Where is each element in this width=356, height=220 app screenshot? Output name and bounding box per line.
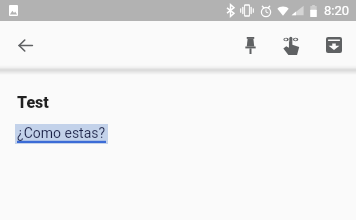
staticText: Test (17, 93, 49, 112)
staticText: ¿Como estas? (17, 125, 106, 141)
button[interactable]: Archive (313, 22, 355, 68)
staticText: 8:20 (324, 3, 350, 18)
button[interactable]: ¿Como estas? (15, 124, 108, 144)
button[interactable]: Navigate up (5, 25, 45, 65)
button[interactable]: Pin (229, 22, 271, 68)
button[interactable]: Touch (271, 22, 313, 68)
